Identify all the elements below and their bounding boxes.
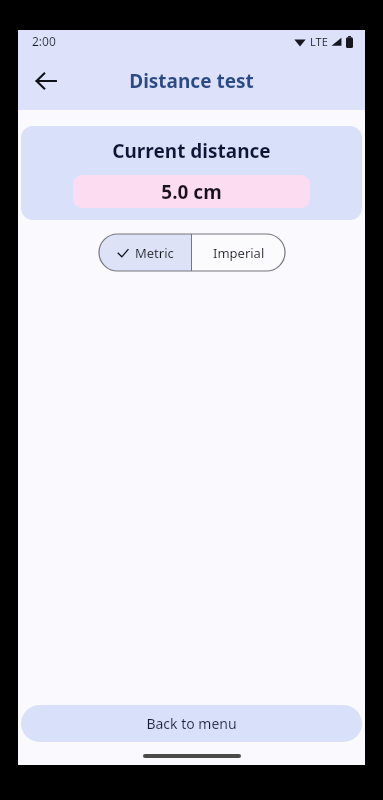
staticText: 5.0 cm — [161, 179, 222, 205]
staticText: Current distance — [112, 138, 271, 164]
staticText: Metric — [135, 244, 174, 262]
button[interactable]: Imperial — [192, 234, 285, 271]
button[interactable]: Metric — [99, 234, 191, 271]
staticText: 2:00 — [32, 33, 56, 49]
button[interactable]: Back — [24, 59, 68, 103]
button[interactable]: Back to menu — [21, 705, 362, 742]
staticText: LTE — [310, 34, 328, 49]
button[interactable]: Current distance — [21, 126, 362, 220]
staticText: Back to menu — [146, 714, 237, 733]
staticText: Imperial — [213, 244, 265, 262]
staticText: Distance test — [129, 68, 254, 94]
